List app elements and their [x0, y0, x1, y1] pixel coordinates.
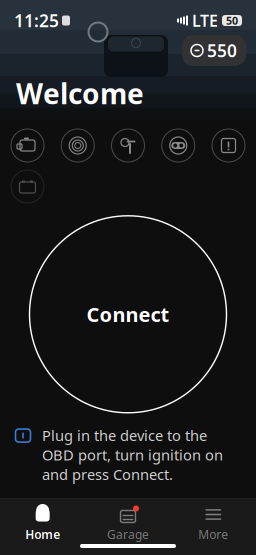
- staticText: LTE: [192, 10, 218, 31]
- staticText: 11:25: [14, 9, 59, 32]
- staticText: 50: [226, 13, 238, 28]
- staticText: Garage: [107, 526, 149, 542]
- button[interactable]: ABS: [61, 129, 94, 162]
- button[interactable]: Home: [0, 505, 85, 542]
- staticText: More: [198, 526, 228, 542]
- button[interactable]: Warnings: [212, 129, 245, 162]
- button[interactable]: Battery: [11, 170, 44, 203]
- staticText: Home: [25, 526, 60, 542]
- button[interactable]: Brakes: [111, 129, 144, 162]
- staticText: Connect: [86, 301, 169, 328]
- button[interactable]: Check engine: [11, 129, 44, 162]
- staticText: Welcome: [16, 75, 144, 112]
- staticText: Plug in the device to the OBD port, turn…: [42, 426, 223, 484]
- button[interactable]: 550 credits: [182, 35, 246, 66]
- staticText: 550: [207, 39, 237, 62]
- button[interactable]: Airbag: [162, 129, 195, 162]
- button[interactable]: Garage: [85, 505, 171, 542]
- button[interactable]: Connect: [29, 216, 226, 413]
- button[interactable]: More: [171, 505, 256, 542]
